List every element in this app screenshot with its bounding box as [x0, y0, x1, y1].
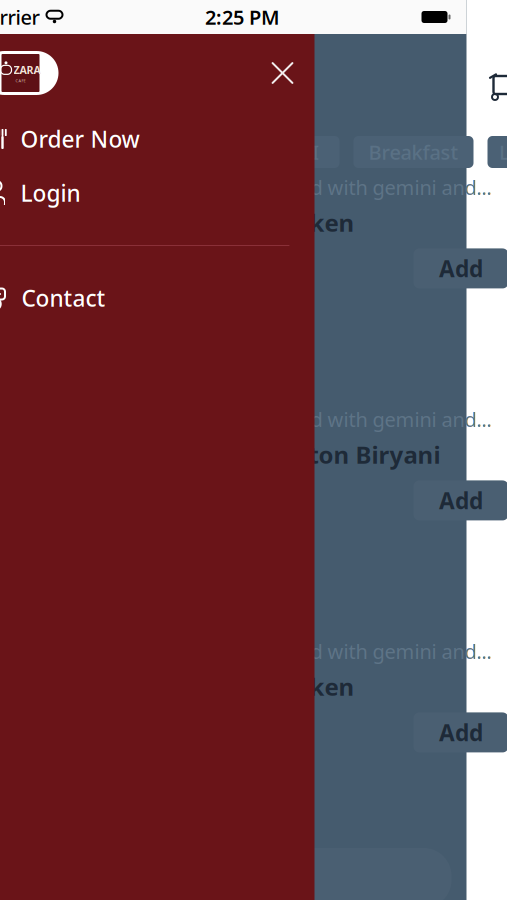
staticText: Chicken — [259, 207, 354, 238]
staticText: ZARA — [13, 63, 40, 77]
staticText: Login — [20, 178, 80, 208]
button[interactable]: Close menu — [260, 51, 304, 95]
staticText: Add — [439, 717, 483, 747]
button[interactable]: Contact — [0, 271, 314, 325]
button[interactable]: Login — [0, 166, 314, 220]
staticText: Served with gemini and... — [259, 174, 491, 201]
staticText: Mutton Biryani — [259, 439, 440, 470]
staticText: Add — [439, 485, 483, 515]
staticText: Chicken — [259, 671, 354, 702]
staticText: Served with gemini and... — [259, 638, 491, 665]
staticText: Contact — [21, 283, 105, 313]
staticText: BIRYANI — [240, 139, 319, 165]
staticText: Add — [439, 253, 483, 283]
staticText: 2:25 PM — [205, 4, 280, 30]
staticText: Carrier — [0, 4, 39, 30]
staticText: CAFE — [15, 78, 25, 83]
staticText: Order Now — [20, 124, 139, 154]
button[interactable]: Order Now — [0, 112, 314, 166]
staticText: Breakfast — [368, 139, 458, 165]
staticText: Served with gemini and... — [259, 406, 491, 433]
staticText: Lun — [499, 139, 507, 165]
